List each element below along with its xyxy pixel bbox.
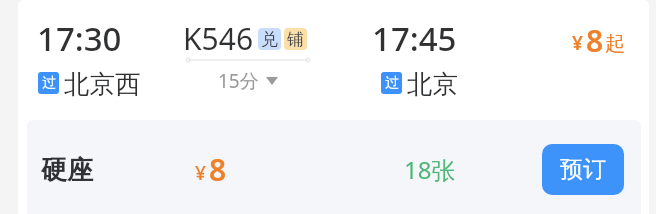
other: 过站 <box>381 72 402 94</box>
button[interactable]: 15分 <box>184 68 312 94</box>
button[interactable]: 17:30 <box>18 0 649 214</box>
other: 过站 <box>38 72 59 94</box>
staticText: K546 <box>183 18 254 59</box>
staticText: 18张 <box>404 153 456 186</box>
staticText: 15分 <box>218 68 259 94</box>
staticText: 铺 <box>287 29 304 50</box>
staticText: 起 <box>605 31 625 56</box>
staticText: 北京西 <box>64 68 141 100</box>
staticText: 17:30 <box>37 16 122 61</box>
staticText: 8 <box>209 149 227 190</box>
staticText: ¥ <box>195 160 206 186</box>
staticText: ¥ <box>572 30 583 56</box>
staticText: 过 <box>42 74 56 92</box>
button[interactable]: 硬座 <box>27 120 641 214</box>
staticText: 8 <box>586 20 604 61</box>
staticText: 硬座 <box>41 154 93 187</box>
staticText: 预订 <box>560 155 606 184</box>
button[interactable]: 预订 <box>542 144 624 195</box>
staticText: 兑 <box>261 29 278 50</box>
button[interactable]: ¥ <box>571 14 647 62</box>
staticText: 北京 <box>407 68 458 100</box>
staticText: 17:45 <box>372 16 457 61</box>
staticText: 过 <box>385 74 399 92</box>
